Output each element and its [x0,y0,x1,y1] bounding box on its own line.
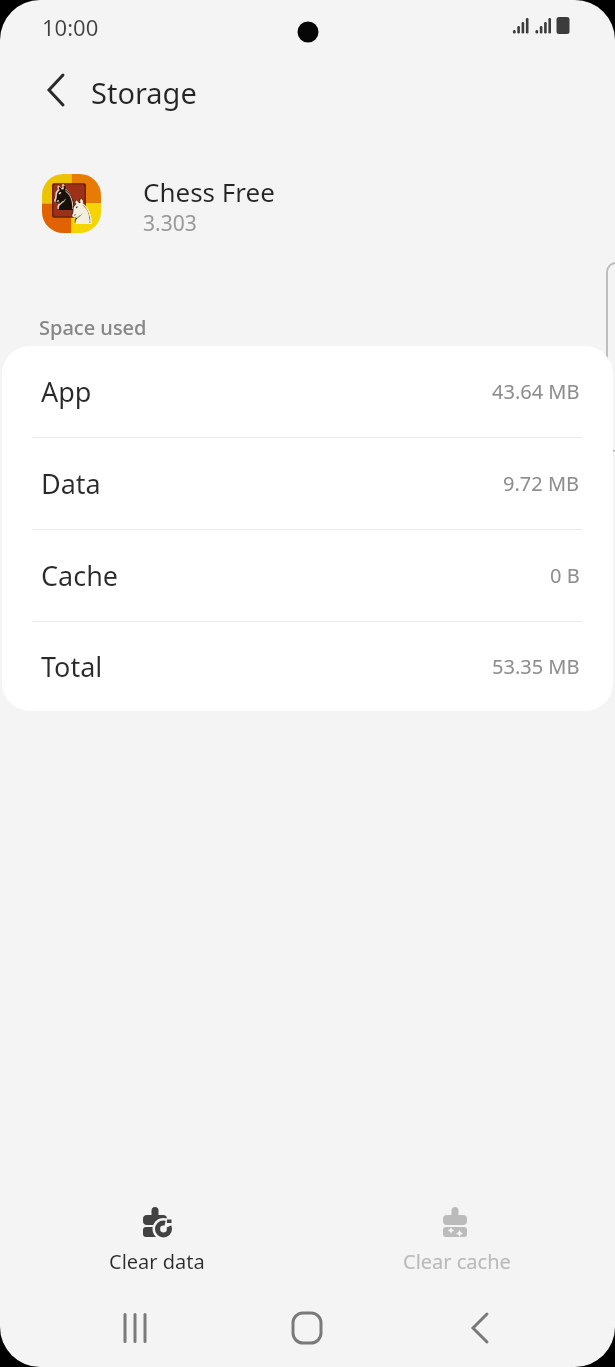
button[interactable]: Clear data [82,1200,232,1282]
staticText: ♞ [66,191,97,231]
staticText: Cache [41,557,119,594]
staticText: 3.303 [143,209,197,238]
staticText: Data [41,465,101,502]
staticText: ♞ [50,178,81,218]
button[interactable] [105,1298,165,1358]
staticText: App [41,373,92,410]
staticText: Clear cache [403,1248,511,1275]
staticText: 53.35 MB [492,653,580,680]
staticText: Chess Free [143,174,275,209]
staticText: 43.64 MB [492,378,580,405]
button[interactable]: Clear cache [382,1200,532,1282]
button[interactable] [450,1298,510,1358]
button[interactable] [32,66,80,114]
staticText: Total [41,648,103,685]
button[interactable] [277,1298,337,1358]
staticText: ♞ [67,192,98,232]
staticText: 0 B [550,562,580,589]
staticText: Clear data [109,1248,205,1275]
staticText: 10:00 [42,12,99,42]
staticText: ♞ [49,177,80,217]
staticText: 9.72 MB [503,470,580,497]
staticText: Storage [91,73,197,112]
staticText: Space used [39,314,147,341]
